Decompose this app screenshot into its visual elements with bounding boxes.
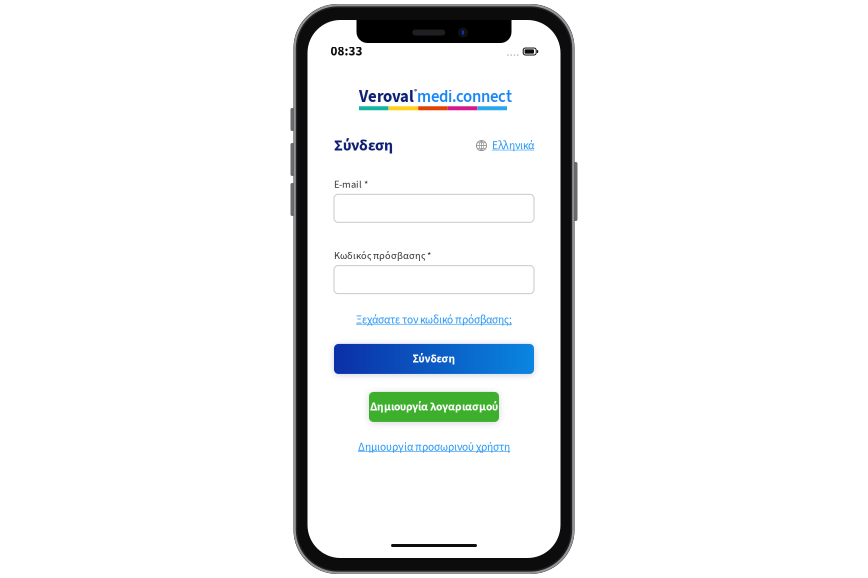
staticText: Σύνδεση: [412, 351, 455, 367]
button[interactable]: Σύνδεση: [334, 344, 534, 374]
staticText: Σύνδεση: [334, 134, 393, 157]
staticText: Δημιουργία λογαριασμού: [370, 399, 498, 415]
button[interactable]: Ελληνικά: [476, 137, 534, 154]
staticText: Ξεχάσατε τον κωδικό πρόσβασης;: [356, 312, 512, 328]
staticText: Ελληνικά: [492, 137, 534, 154]
staticText: E-mail *: [334, 177, 368, 192]
staticText: 08:33: [330, 42, 362, 61]
staticText: Κωδικός πρόσβασης *: [334, 248, 431, 263]
button[interactable]: Δημιουργία λογαριασμού: [369, 392, 499, 422]
button[interactable]: Ξεχάσατε τον κωδικό πρόσβασης;: [356, 312, 512, 328]
staticText: Δημιουργία προσωρινού χρήστη: [358, 439, 510, 455]
staticText: ®: [414, 87, 417, 96]
staticText: medi.connect: [417, 85, 512, 109]
button[interactable]: Δημιουργία προσωρινού χρήστη: [358, 439, 510, 455]
staticText: Veroval: [359, 85, 414, 109]
